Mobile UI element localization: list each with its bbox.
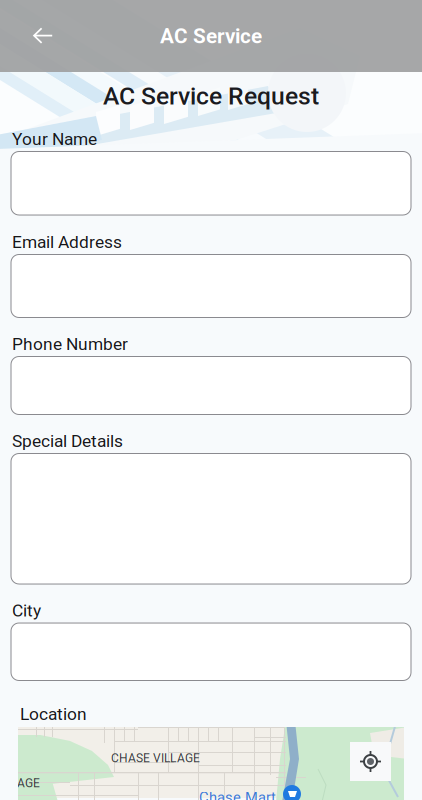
staticText: Your Name bbox=[12, 129, 97, 149]
staticText: City bbox=[12, 600, 41, 621]
staticText: Special Details bbox=[12, 431, 123, 451]
staticText: Email Address bbox=[12, 232, 122, 252]
button[interactable]: Phone Number bbox=[11, 356, 411, 414]
staticText: Location bbox=[20, 704, 87, 724]
staticText: AC Service Request bbox=[103, 81, 319, 110]
button[interactable]: Your Name bbox=[11, 151, 411, 215]
button[interactable]: City bbox=[11, 623, 411, 680]
staticText: AC Service bbox=[160, 24, 262, 48]
staticText: AGE bbox=[17, 776, 40, 790]
button[interactable]: Email Address bbox=[11, 254, 411, 317]
staticText: Chase Mart bbox=[199, 789, 276, 800]
staticText: CHASE VILLAGE bbox=[111, 751, 200, 765]
staticText: Phone Number bbox=[12, 334, 128, 354]
button[interactable]: Center on my location bbox=[350, 742, 391, 781]
button[interactable]: Special Details bbox=[11, 453, 411, 584]
button[interactable]: Back bbox=[0, 14, 63, 57]
